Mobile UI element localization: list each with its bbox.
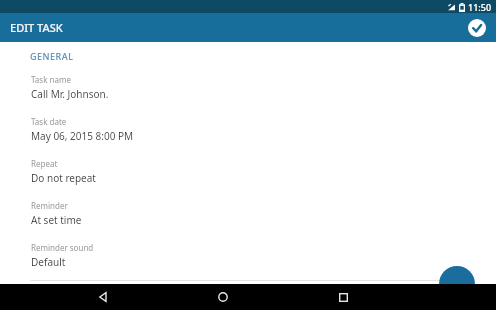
staticText: At set time [31,213,82,227]
button[interactable]: Recents [325,284,361,310]
button[interactable]: Reminder [0,200,496,227]
button[interactable]: Back [85,284,121,310]
button[interactable]: Task date [0,116,496,143]
staticText: May 06, 2015 8:00 PM [31,129,134,143]
staticText: Default [31,255,66,269]
staticText: Call Mr. Johnson. [31,87,109,101]
staticText: Repeat [31,158,58,169]
staticText: Do not repeat [31,171,96,185]
button[interactable]: Repeat [0,158,496,185]
button[interactable]: Add task [439,266,475,302]
staticText: Task date [31,116,67,127]
button[interactable]: Reminder sound [0,242,496,269]
button[interactable]: Home [205,284,241,310]
staticText: EDIT TASK [10,20,63,35]
button[interactable]: Task name [0,74,496,101]
staticText: 11:50 [468,1,492,13]
staticText: Reminder sound [31,242,94,253]
staticText: Reminder [31,200,68,211]
staticText: Task name [31,74,71,85]
button[interactable]: Save [464,15,490,41]
staticText: GENERAL [30,50,74,62]
